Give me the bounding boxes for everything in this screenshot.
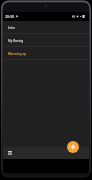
button[interactable]: My Boxing [3, 34, 89, 47]
button[interactable]: Add [67, 141, 79, 153]
staticText: Intro [8, 26, 16, 30]
staticText: 20:35 [5, 14, 15, 19]
button[interactable]: Menu [3, 147, 89, 159]
button[interactable]: Warming up [3, 47, 89, 60]
button[interactable]: Intro [3, 21, 89, 34]
staticText: Warming up [8, 52, 26, 56]
staticText: My Boxing [8, 39, 24, 43]
button[interactable]: Menu [5, 148, 15, 158]
